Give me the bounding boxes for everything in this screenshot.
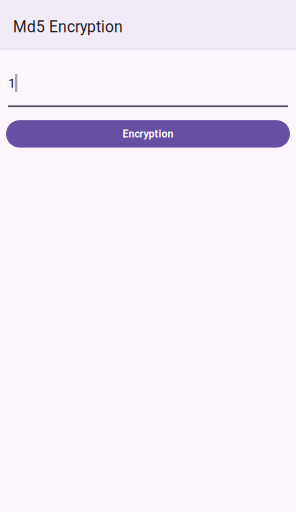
staticText: 1 [8, 75, 16, 91]
button[interactable]: Text to encrypt [8, 74, 288, 107]
button[interactable]: Encryption [6, 120, 290, 148]
staticText: Encryption [122, 128, 173, 140]
staticText: Md5 Encryption [13, 18, 123, 36]
